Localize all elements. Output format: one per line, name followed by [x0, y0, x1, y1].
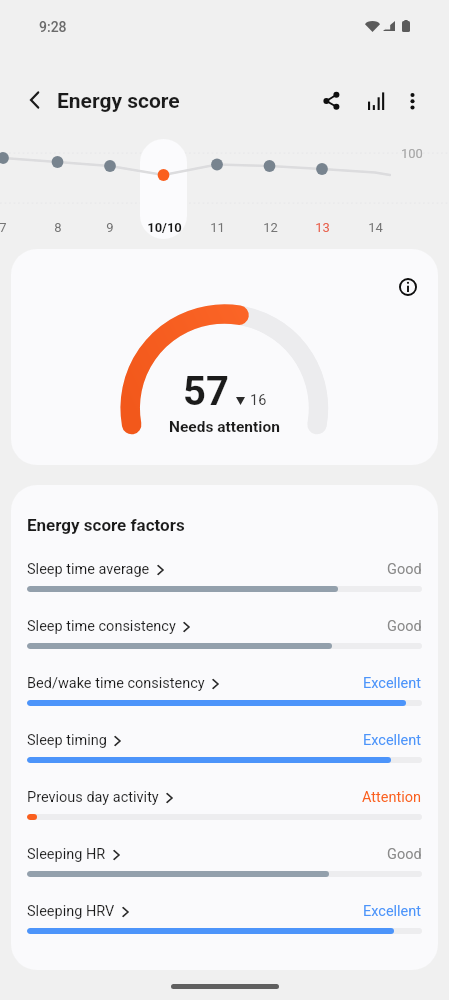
staticText: 10/10: [147, 220, 182, 235]
button[interactable]: Sleep time consistency: [27, 592, 422, 649]
staticText: 12: [263, 220, 278, 235]
staticText: Sleep time consistency: [27, 618, 176, 635]
staticText: 9: [106, 220, 114, 235]
staticText: 57: [183, 368, 229, 415]
staticText: 11: [210, 220, 225, 235]
staticText: Sleep time average: [27, 561, 150, 578]
button[interactable]: Sleep time average: [27, 535, 422, 592]
button[interactable]: Statistics: [355, 80, 397, 122]
staticText: Needs attention: [169, 418, 280, 436]
staticText: Bed/wake time consistency: [27, 675, 205, 692]
button[interactable]: Back: [18, 83, 52, 117]
staticText: 14: [368, 220, 383, 235]
staticText: Energy score: [57, 89, 180, 114]
staticText: Sleep timing: [27, 732, 107, 749]
button[interactable]: [140, 139, 187, 239]
staticText: 7: [0, 220, 7, 235]
button[interactable]: Share: [311, 80, 353, 122]
staticText: Attention: [362, 789, 422, 806]
staticText: Good: [387, 846, 422, 863]
staticText: Excellent: [363, 675, 422, 692]
button[interactable]: Sleeping HR: [27, 820, 422, 877]
staticText: Excellent: [363, 732, 422, 749]
staticText: 8: [54, 220, 62, 235]
button[interactable]: Previous day activity: [27, 763, 422, 820]
button[interactable]: Info: [388, 267, 428, 307]
button[interactable]: Sleep timing: [27, 706, 422, 763]
staticText: Sleeping HR: [27, 846, 106, 863]
button[interactable]: Bed/wake time consistency: [27, 649, 422, 706]
staticText: 9:28: [39, 19, 67, 35]
staticText: Previous day activity: [27, 789, 159, 806]
staticText: 100: [401, 146, 423, 161]
staticText: Good: [387, 561, 422, 578]
staticText: Good: [387, 618, 422, 635]
button[interactable]: More options: [391, 80, 433, 122]
staticText: 16: [250, 392, 267, 409]
staticText: Excellent: [363, 903, 422, 920]
staticText: Sleeping HRV: [27, 903, 115, 920]
staticText: Energy score factors: [27, 515, 185, 535]
staticText: 13: [315, 220, 330, 235]
button[interactable]: Sleeping HRV: [27, 877, 422, 934]
